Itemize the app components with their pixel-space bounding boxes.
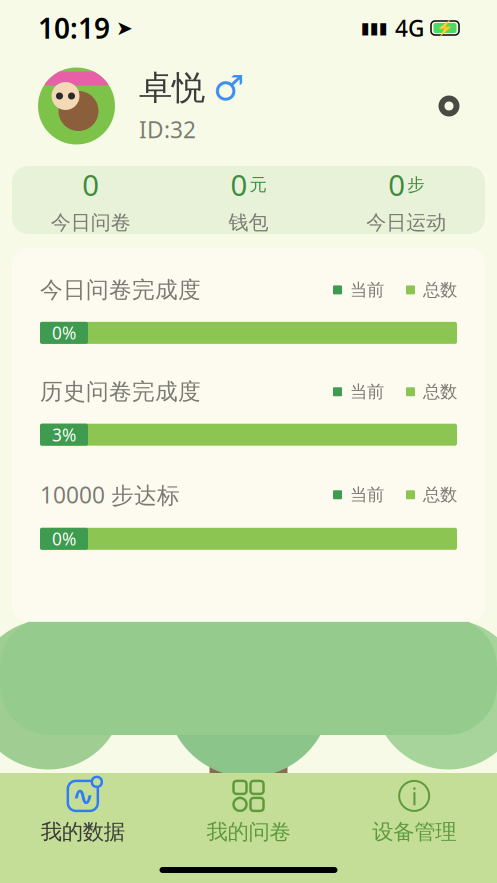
staticText: 历史问卷完成度 <box>40 378 201 406</box>
staticText: ➤ <box>116 17 133 39</box>
staticText: i <box>411 780 417 812</box>
staticText: ∿ <box>72 781 94 811</box>
staticText: 当前 <box>350 279 384 301</box>
staticText: 0 <box>230 165 247 204</box>
staticText: 0% <box>52 527 76 550</box>
staticText: 今日运动 <box>366 210 446 235</box>
staticText: 0% <box>52 321 76 344</box>
button[interactable]: ∿ <box>0 781 166 843</box>
staticText: 我的数据 <box>41 819 125 845</box>
staticText: 4G <box>395 13 424 43</box>
staticText: 卓悦 <box>139 67 205 108</box>
staticText: 10000 步达标 <box>40 480 180 510</box>
staticText: 0 <box>388 165 405 204</box>
staticText: 今日问卷完成度 <box>40 276 201 304</box>
staticText: ID:32 <box>139 114 196 144</box>
staticText: 总数 <box>423 279 457 301</box>
staticText: 3% <box>52 423 76 446</box>
staticText: 元 <box>249 174 266 195</box>
staticText: ♂ <box>213 68 244 108</box>
staticText: 总数 <box>423 381 457 402</box>
staticText: 钱包 <box>228 210 268 235</box>
staticText: 今日问卷 <box>51 210 131 235</box>
button[interactable]: Settings <box>427 84 471 128</box>
staticText: 10:19 <box>38 9 110 47</box>
staticText: 总数 <box>423 484 457 505</box>
staticText: 我的问卷 <box>206 819 290 845</box>
button[interactable]: 我的问卷 <box>166 781 331 843</box>
staticText: 步 <box>407 174 424 195</box>
staticText: 当前 <box>350 484 384 505</box>
staticText: 设备管理 <box>372 819 456 845</box>
staticText: ⚡ <box>436 20 454 36</box>
button[interactable]: i <box>331 781 497 843</box>
staticText: ▮▮▮ <box>361 19 388 37</box>
staticText: 0 <box>82 165 99 204</box>
staticText: 当前 <box>350 381 384 402</box>
